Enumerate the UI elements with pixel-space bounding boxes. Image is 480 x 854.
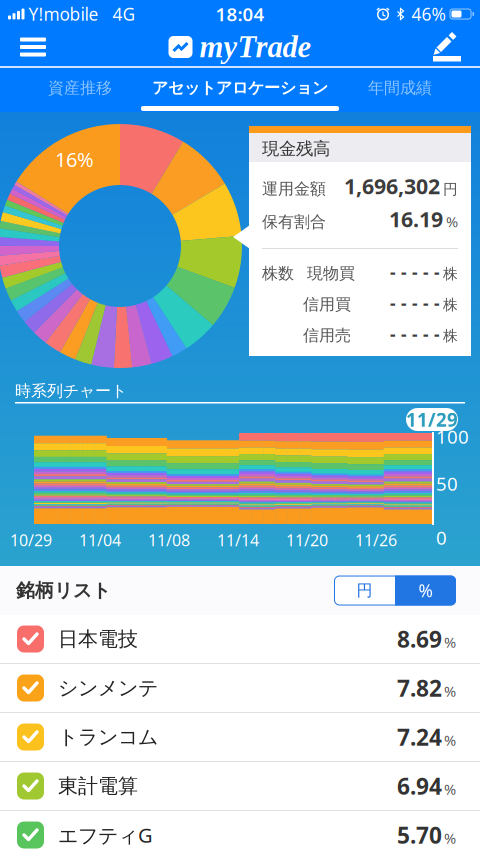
staticText: 運用金額 — [262, 179, 326, 199]
staticText: 11/26 — [355, 529, 397, 551]
staticText: 株数 — [262, 264, 294, 283]
staticText: 50 — [436, 471, 458, 496]
staticText: 11/20 — [286, 529, 328, 551]
button[interactable]: 11/29 — [406, 408, 458, 431]
staticText: 信用売 — [303, 326, 351, 345]
staticText: 7.82 — [397, 673, 442, 703]
staticText: 8.69 — [397, 624, 442, 654]
staticText: myTrade — [199, 30, 311, 64]
staticText: % — [444, 779, 456, 799]
staticText: 10/29 — [10, 529, 52, 551]
staticText: 銘柄リスト — [16, 579, 111, 602]
button[interactable]: 年間成績 — [320, 68, 480, 108]
staticText: - - - - - — [390, 291, 440, 314]
staticText: 1,696,302 — [344, 172, 440, 200]
staticText: 保有割合 — [262, 212, 326, 232]
staticText: % — [444, 632, 456, 652]
staticText: 株 — [443, 296, 458, 314]
staticText: 100 — [436, 424, 469, 449]
button[interactable]: 円 — [334, 575, 395, 605]
button[interactable]: シンメンテ — [0, 664, 480, 713]
staticText: 円 — [356, 581, 372, 600]
staticText: - - - - - — [390, 322, 440, 345]
staticText: % — [418, 579, 432, 602]
staticText: % — [444, 681, 456, 701]
staticText: 年間成績 — [368, 78, 432, 98]
staticText: シンメンテ — [58, 676, 158, 700]
staticText: 6.94 — [397, 771, 442, 801]
button[interactable]: 資産推移 — [0, 68, 160, 108]
staticText: 円 — [443, 180, 458, 198]
staticText: 46% — [411, 2, 445, 25]
staticText: 11/04 — [79, 529, 121, 551]
staticText: % — [444, 828, 456, 848]
staticText: 資産推移 — [48, 78, 112, 98]
staticText: 時系列チャート — [15, 381, 127, 401]
staticText: - - - - - — [390, 260, 440, 283]
staticText: 株 — [443, 265, 458, 283]
staticText: エフティG — [58, 822, 153, 848]
staticText: 5.70 — [397, 820, 442, 850]
staticText: 現物買 — [307, 264, 355, 283]
button[interactable]: トランコム — [0, 713, 480, 762]
staticText: 11/29 — [406, 407, 458, 432]
staticText: Y!mobile — [28, 2, 98, 25]
staticText: 16.19 — [389, 205, 443, 233]
staticText: 株 — [443, 327, 458, 345]
button[interactable]: アセットアロケーション — [160, 68, 320, 108]
button[interactable]: エフティG — [0, 811, 480, 854]
staticText: 16% — [55, 146, 94, 173]
staticText: 18:04 — [215, 2, 264, 26]
button[interactable]: Menu — [0, 29, 46, 64]
staticText: アセットアロケーション — [152, 78, 328, 98]
staticText: トランコム — [58, 725, 158, 749]
staticText: 東計電算 — [58, 774, 138, 798]
staticText: 信用買 — [303, 295, 351, 314]
staticText: 現金残高 — [262, 138, 330, 159]
staticText: 11/08 — [148, 529, 190, 551]
staticText: 7.24 — [397, 722, 442, 752]
staticText: % — [444, 730, 456, 750]
staticText: 11/14 — [217, 529, 259, 551]
button[interactable]: 日本電技 — [0, 615, 480, 664]
staticText: 4G — [112, 2, 135, 25]
staticText: % — [446, 212, 458, 231]
button[interactable]: % — [395, 575, 456, 605]
button[interactable]: 東計電算 — [0, 762, 480, 811]
staticText: 日本電技 — [58, 627, 138, 651]
staticText: 0 — [436, 525, 447, 550]
button[interactable]: Edit — [432, 24, 480, 70]
